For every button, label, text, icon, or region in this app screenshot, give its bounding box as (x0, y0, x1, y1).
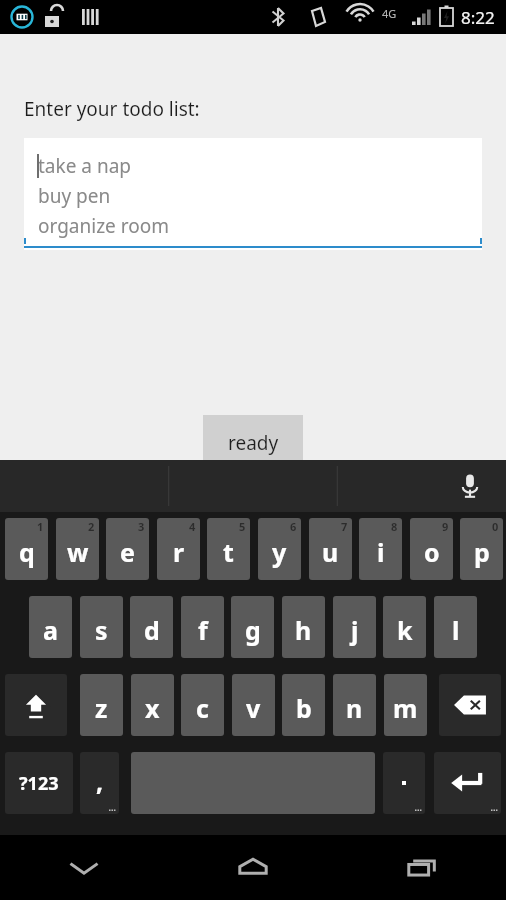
staticText: q (19, 535, 35, 569)
button[interactable]: Enter (434, 752, 501, 814)
staticText: g (245, 613, 261, 647)
button[interactable]: v (232, 674, 275, 736)
staticText: x (145, 691, 160, 725)
staticText: 8:22 (461, 6, 495, 29)
button[interactable]: h (282, 596, 325, 658)
button[interactable]: Home (168, 835, 337, 900)
button[interactable]: Shift (5, 674, 67, 736)
button[interactable]: Comma (80, 752, 119, 814)
button[interactable]: take a nap (24, 138, 482, 250)
staticText: take a nap (38, 153, 132, 179)
button[interactable]: Period (383, 752, 425, 814)
staticText: 4 (189, 519, 196, 534)
staticText: i (377, 535, 385, 569)
button[interactable]: Backspace (439, 674, 501, 736)
button[interactable]: ?123 (5, 752, 73, 814)
staticText: m (393, 691, 418, 725)
staticText: 1 (37, 519, 44, 534)
staticText: 4G (382, 6, 397, 21)
staticText: t (223, 535, 234, 569)
button[interactable]: b (282, 674, 325, 736)
staticText: ready (228, 430, 279, 456)
button[interactable]: y (258, 518, 301, 580)
button[interactable]: j (333, 596, 376, 658)
button[interactable]: a (29, 596, 72, 658)
staticText: 6 (290, 519, 297, 534)
staticText: buy pen (38, 183, 111, 209)
button[interactable]: Recent apps (337, 835, 506, 900)
staticText: 5 (239, 519, 246, 534)
button[interactable]: w (56, 518, 99, 580)
button[interactable]: n (333, 674, 376, 736)
button[interactable]: l (434, 596, 477, 658)
staticText: , (96, 764, 104, 798)
staticText: ?123 (19, 771, 59, 796)
staticText: c (196, 691, 209, 725)
staticText: h (295, 613, 312, 647)
staticText: d (144, 613, 160, 647)
staticText: f (198, 613, 208, 647)
staticText: 3 (138, 519, 145, 534)
staticText: k (397, 613, 413, 647)
button[interactable]: g (231, 596, 274, 658)
staticText: e (120, 535, 135, 569)
button[interactable]: m (384, 674, 427, 736)
staticText: Enter your todo list: (24, 96, 200, 122)
button[interactable]: c (181, 674, 224, 736)
button[interactable]: e (106, 518, 149, 580)
staticText: n (346, 691, 363, 725)
button[interactable]: p (460, 518, 503, 580)
staticText: o (424, 535, 440, 569)
button[interactable]: i (359, 518, 402, 580)
staticText: b (296, 691, 312, 725)
button[interactable]: q (5, 518, 48, 580)
button[interactable]: d (130, 596, 173, 658)
button[interactable]: s (80, 596, 123, 658)
staticText: z (95, 691, 108, 725)
staticText: l (452, 613, 460, 647)
staticText: s (95, 613, 108, 647)
staticText: a (43, 613, 58, 647)
button[interactable]: Voice input (452, 468, 488, 504)
button[interactable]: u (309, 518, 352, 580)
button[interactable]: k (383, 596, 426, 658)
button[interactable]: z (80, 674, 123, 736)
button[interactable]: Hide keyboard (0, 835, 168, 900)
staticText: 2 (88, 519, 95, 534)
button[interactable]: t (207, 518, 250, 580)
staticText: 9 (442, 519, 449, 534)
button[interactable]: r (157, 518, 200, 580)
staticText: p (474, 535, 490, 569)
staticText: w (67, 535, 89, 569)
staticText: y (272, 535, 287, 569)
staticText: 8 (391, 519, 398, 534)
staticText: r (173, 535, 185, 569)
staticText: u (322, 535, 339, 569)
button[interactable]: f (181, 596, 224, 658)
staticText: 0 (492, 519, 499, 534)
staticText: j (351, 613, 359, 647)
staticText: v (246, 691, 261, 725)
staticText: organize room (38, 213, 169, 239)
button[interactable]: o (410, 518, 453, 580)
staticText: 7 (341, 519, 348, 534)
button[interactable]: x (131, 674, 174, 736)
button[interactable]: ready (203, 415, 303, 470)
